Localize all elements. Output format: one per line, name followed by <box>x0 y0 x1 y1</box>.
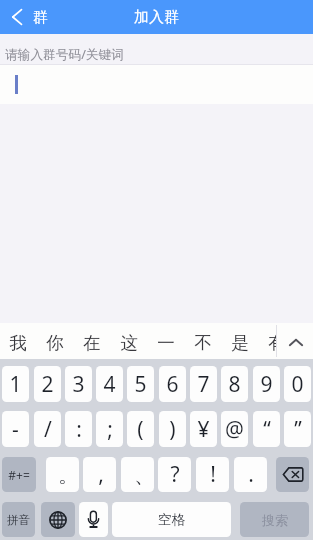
button[interactable]: @ <box>221 411 248 447</box>
button[interactable]: 空格 <box>112 502 231 537</box>
button[interactable]: - <box>2 411 29 447</box>
button[interactable]: Switch input method <box>41 502 75 537</box>
staticText: 我 <box>9 332 27 354</box>
staticText: 。 <box>58 462 79 488</box>
staticText: @ <box>225 415 244 444</box>
staticText: : <box>76 415 82 444</box>
staticText: 5 <box>134 370 147 399</box>
staticText: 1 <box>9 370 22 399</box>
staticText: ( <box>137 415 144 444</box>
staticText: 空格 <box>158 511 185 528</box>
button[interactable]: 3 <box>65 366 92 402</box>
staticText: 4 <box>103 370 116 399</box>
button[interactable]: 2 <box>34 366 61 402</box>
staticText: 是 <box>231 332 249 354</box>
staticText: 2 <box>41 370 54 399</box>
staticText: 有 <box>268 332 276 354</box>
button[interactable]: 这 <box>110 325 147 359</box>
button[interactable]: ) <box>159 411 186 447</box>
button[interactable]: More candidates <box>277 323 313 359</box>
button[interactable]: 拼音 <box>2 502 35 537</box>
staticText: . <box>248 460 254 489</box>
staticText: #+= <box>8 467 30 483</box>
staticText: 0 <box>291 370 304 399</box>
button[interactable]: / <box>34 411 61 447</box>
button[interactable]: 4 <box>96 366 123 402</box>
staticText: 6 <box>166 370 179 399</box>
button[interactable]: : <box>65 411 92 447</box>
button[interactable]: 群 <box>0 0 60 34</box>
staticText: 请输入群号码/关键词 <box>5 45 124 62</box>
staticText: , <box>98 460 104 489</box>
button[interactable]: 搜索 <box>240 502 309 537</box>
staticText: ) <box>169 415 176 444</box>
button[interactable]: 1 <box>2 366 29 402</box>
button[interactable]: . <box>234 457 267 492</box>
staticText: / <box>44 415 52 444</box>
staticText: 不 <box>194 332 212 354</box>
button[interactable]: ! <box>196 457 229 492</box>
staticText: 群 <box>33 8 48 26</box>
button[interactable]: 在 <box>73 325 110 359</box>
button[interactable]: , <box>83 457 116 492</box>
button[interactable]: ( <box>127 411 154 447</box>
button[interactable]: #+= <box>2 457 36 492</box>
staticText: 8 <box>228 370 241 399</box>
button[interactable]: ” <box>284 411 311 447</box>
button[interactable]: 有 <box>258 325 276 359</box>
staticText: ? <box>170 460 180 489</box>
button[interactable]: 9 <box>253 366 280 402</box>
staticText: 、 <box>134 462 154 488</box>
staticText: 一 <box>157 332 175 354</box>
staticText: 3 <box>72 370 85 399</box>
staticText: 加入群 <box>134 8 179 27</box>
staticText: ” <box>294 415 302 444</box>
button[interactable]: 。 <box>46 457 79 492</box>
button[interactable]: Voice input <box>79 502 108 537</box>
button[interactable]: 一 <box>147 325 184 359</box>
button[interactable]: 5 <box>127 366 154 402</box>
button[interactable]: 8 <box>221 366 248 402</box>
button[interactable] <box>0 65 313 104</box>
button[interactable]: 0 <box>284 366 311 402</box>
button[interactable]: 你 <box>36 325 73 359</box>
staticText: ¥ <box>197 415 210 444</box>
button[interactable]: 我 <box>0 325 36 359</box>
staticText: 7 <box>197 370 210 399</box>
button[interactable]: 6 <box>159 366 186 402</box>
button[interactable]: ; <box>96 411 123 447</box>
button[interactable]: “ <box>253 411 280 447</box>
staticText: 搜索 <box>262 512 288 528</box>
button[interactable]: ¥ <box>190 411 217 447</box>
button[interactable]: Backspace <box>276 457 309 492</box>
staticText: 你 <box>46 332 64 354</box>
button[interactable]: 7 <box>190 366 217 402</box>
button[interactable]: 是 <box>221 325 258 359</box>
staticText: 这 <box>120 332 138 354</box>
button[interactable]: 、 <box>121 457 154 492</box>
button[interactable]: 不 <box>184 325 221 359</box>
button[interactable]: ? <box>158 457 191 492</box>
staticText: “ <box>263 415 271 444</box>
staticText: 拼音 <box>7 513 30 527</box>
staticText: 在 <box>83 332 101 354</box>
staticText: 9 <box>260 370 273 399</box>
staticText: - <box>12 415 19 444</box>
staticText: ; <box>107 415 113 444</box>
staticText: ! <box>210 460 216 489</box>
